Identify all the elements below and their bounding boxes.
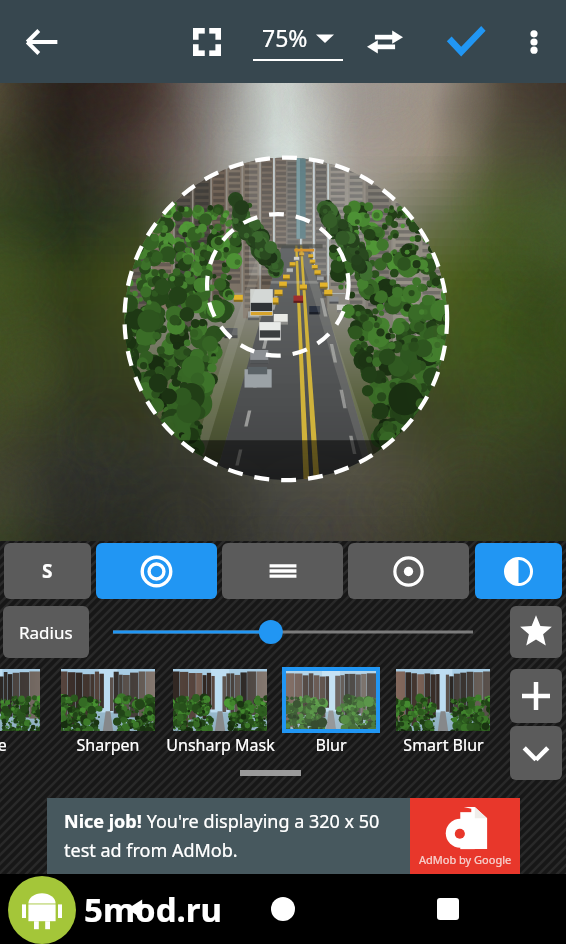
staticText: Unsharp Mask	[166, 734, 275, 756]
staticText: 75%	[262, 22, 308, 53]
button[interactable]: Apply	[437, 0, 495, 83]
button[interactable]: Nice job!	[47, 798, 520, 874]
button[interactable]: Sharpen	[52, 662, 164, 752]
button[interactable]: Invert	[475, 543, 562, 599]
button[interactable]: Add	[510, 669, 562, 723]
button[interactable]: Swap before after	[355, 0, 415, 83]
button[interactable]: Back	[10, 0, 74, 83]
button[interactable]: Smart Blur	[387, 662, 499, 752]
button[interactable]: use	[0, 662, 49, 752]
button[interactable]: Unsharp Mask	[164, 662, 276, 752]
button[interactable]: Fit to screen	[181, 0, 233, 83]
staticText: test ad from AdMob.	[64, 838, 238, 863]
staticText: AdMob by Google	[419, 852, 512, 867]
button[interactable]: Home	[236, 878, 330, 940]
button[interactable]: Blur	[275, 662, 387, 752]
button[interactable]: Radial blur	[96, 543, 217, 599]
staticText: Sharpen	[76, 734, 140, 756]
staticText: S	[42, 558, 53, 584]
button[interactable]: Saturation	[4, 543, 91, 599]
button[interactable]: Back	[88, 878, 182, 940]
button[interactable]: Recents	[401, 878, 495, 940]
button[interactable]: Favorite	[510, 606, 562, 658]
staticText: 5mod.ru	[84, 887, 223, 932]
staticText: use	[0, 734, 7, 756]
button[interactable]	[108, 615, 478, 649]
staticText: Nice job!	[64, 809, 142, 834]
button[interactable]: More options	[511, 0, 557, 83]
staticText: Blur	[315, 734, 347, 756]
staticText: Radius	[19, 621, 73, 644]
button[interactable]: 75%	[252, 0, 344, 83]
staticText: You're displaying a 320 x 50	[142, 809, 380, 834]
button[interactable]: Spot blur	[348, 543, 469, 599]
staticText: Smart Blur	[403, 734, 484, 756]
button[interactable]: Radius	[3, 606, 89, 658]
button[interactable]: Linear blur	[222, 543, 343, 599]
button[interactable]: Expand	[510, 726, 562, 780]
